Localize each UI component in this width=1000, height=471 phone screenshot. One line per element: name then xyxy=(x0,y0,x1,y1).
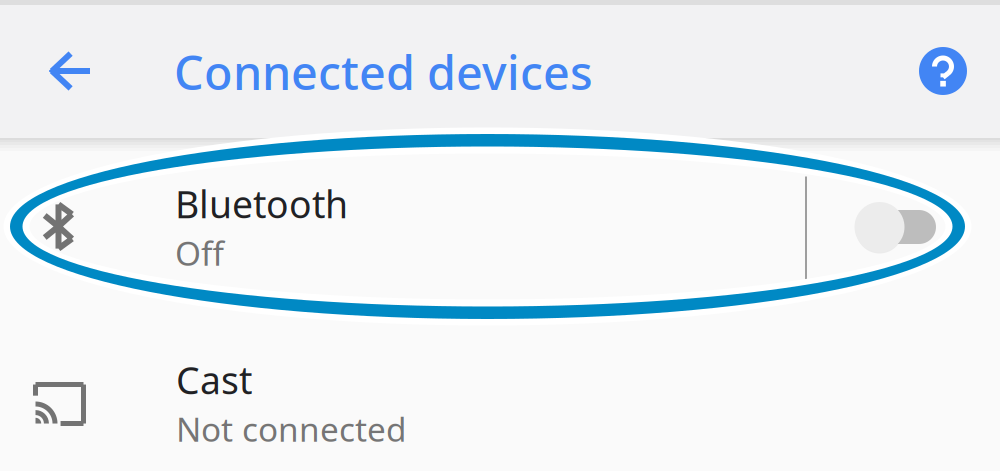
staticText: Bluetooth xyxy=(175,179,348,229)
staticText: Cast xyxy=(176,355,252,405)
staticText: Off xyxy=(175,231,224,275)
staticText: Not connected xyxy=(176,407,407,451)
button[interactable]: Help xyxy=(901,29,985,113)
button[interactable]: Bluetooth, off xyxy=(806,138,1000,308)
button[interactable]: Back xyxy=(21,23,117,119)
button[interactable]: Bluetooth xyxy=(0,138,1000,308)
button[interactable]: Cast xyxy=(0,308,1000,471)
staticText: Connected devices xyxy=(174,41,593,103)
